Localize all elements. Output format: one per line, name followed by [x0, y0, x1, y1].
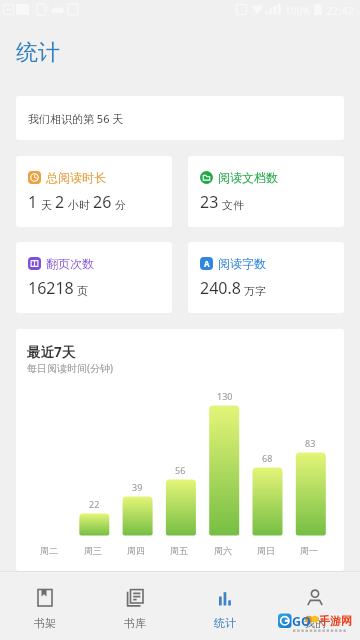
staticText: 16218 [28, 277, 74, 299]
staticText: 总阅读时长 [46, 170, 106, 185]
staticText: 130 [217, 390, 233, 402]
staticText: 56 [175, 464, 186, 476]
staticText: 阅读文档数 [218, 170, 278, 185]
other: 书库 [126, 589, 144, 607]
staticText: 周二 [40, 545, 58, 556]
staticText: 1 [28, 191, 38, 213]
button[interactable]: 我们相识的第 56 天 [16, 96, 344, 140]
staticText: 统计 [16, 39, 60, 67]
staticText: 23 [200, 191, 219, 213]
staticText: 翻页次数 [46, 256, 94, 271]
staticText: 26 [93, 191, 112, 213]
other: 我的 [306, 589, 324, 607]
staticText: 周一 [300, 545, 318, 556]
staticText: 我们相识的第 56 天 [28, 111, 124, 126]
staticText: 最近7天 [27, 343, 76, 361]
staticText: 统计 [214, 616, 236, 630]
staticText: 39 [132, 481, 143, 493]
staticText: 小时 [68, 198, 90, 212]
button[interactable]: 统计 [180, 572, 270, 640]
staticText: 83 [305, 437, 316, 449]
staticText: 68 [262, 452, 273, 464]
staticText: 书库 [124, 616, 146, 630]
staticText: 文件 [222, 198, 244, 212]
staticText: GO [292, 613, 311, 630]
staticText: 分 [115, 198, 126, 212]
staticText: 240.8 [200, 277, 241, 299]
staticText: 天 [41, 198, 52, 212]
button[interactable]: 书库 [90, 572, 180, 640]
staticText: 我的 [304, 616, 326, 630]
button[interactable]: 阅读文档数 [188, 156, 344, 227]
staticText: 周六 [214, 545, 232, 556]
staticText: 页 [77, 284, 88, 298]
button[interactable]: 我的 [270, 572, 360, 640]
button[interactable]: 书架 [0, 572, 90, 640]
button[interactable]: 总阅读时长 [16, 156, 172, 227]
staticText: 2 [55, 191, 65, 213]
button[interactable]: 翻页次数 [16, 242, 172, 313]
staticText: 阅读字数 [218, 256, 266, 271]
staticText: 周四 [127, 545, 145, 556]
staticText: 万字 [244, 284, 266, 298]
staticText: 书架 [34, 616, 56, 630]
staticText: A [204, 258, 210, 269]
staticText: 周五 [170, 545, 188, 556]
other: 书架 [36, 589, 54, 607]
staticText: 每日阅读时间(分钟) [27, 361, 113, 375]
staticText: 手游网 [319, 614, 352, 628]
staticText: 周三 [84, 545, 102, 556]
button[interactable]: A [188, 242, 344, 313]
other: 统计 [216, 589, 234, 607]
staticText: 22 [89, 498, 100, 510]
staticText: 周日 [257, 545, 275, 556]
